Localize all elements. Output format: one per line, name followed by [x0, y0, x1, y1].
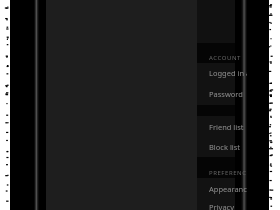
button[interactable]	[197, 116, 235, 157]
staticText: PREFERENCES	[209, 169, 247, 177]
button[interactable]	[197, 178, 235, 210]
staticText: Password	[209, 89, 243, 99]
staticText: Logged in as	[209, 68, 247, 78]
staticText: ACCOUNT	[209, 54, 241, 62]
staticText: Appearance	[209, 184, 247, 194]
staticText: Block list	[209, 142, 241, 152]
button[interactable]: Next screenshot	[269, 0, 280, 210]
staticText: Privacy	[209, 202, 235, 210]
button[interactable]	[197, 63, 235, 105]
button[interactable]: Previous screenshot	[0, 0, 10, 210]
staticText: Friend list	[209, 122, 244, 132]
